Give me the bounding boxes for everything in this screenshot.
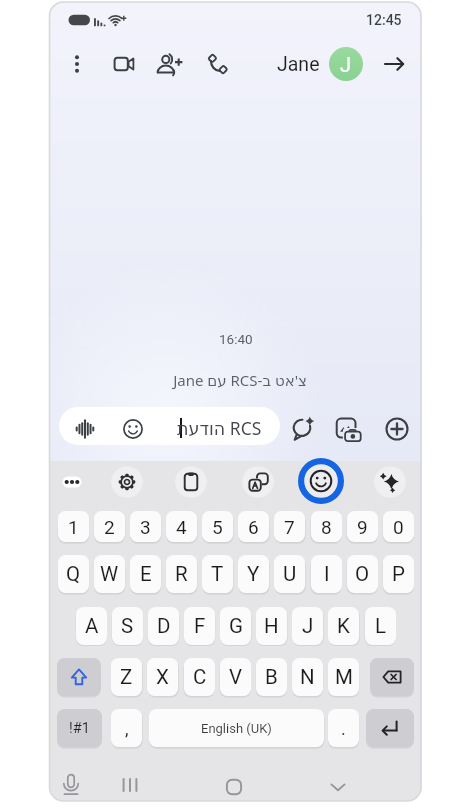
staticText: J [340,53,352,76]
button[interactable] [119,415,147,443]
button[interactable] [56,770,86,800]
staticText: Y [247,562,260,586]
staticText: A [85,614,99,638]
button[interactable]: 0 [383,511,414,542]
button[interactable] [59,407,280,445]
button[interactable]: !#1 [57,709,102,747]
button[interactable]: , [111,709,142,747]
button[interactable] [203,49,233,79]
button[interactable]: J [329,47,363,81]
staticText: P [392,562,405,586]
button[interactable] [57,658,101,696]
button[interactable]: H [256,607,287,645]
button[interactable]: V [220,658,251,696]
button[interactable]: 4 [166,511,197,542]
button[interactable]: 5 [202,511,233,542]
button[interactable]: Z [111,658,142,696]
staticText: E [140,562,152,586]
button[interactable] [71,415,99,443]
button[interactable]: 7 [274,511,305,542]
staticText: , [125,718,129,739]
staticText: B [265,665,278,689]
button[interactable]: N [292,658,323,696]
button[interactable] [372,464,408,500]
button[interactable]: D [148,607,179,645]
button[interactable]: R [166,555,197,593]
staticText: 16:40 [219,331,253,347]
staticText: G [229,614,243,638]
staticText: X [156,665,169,689]
staticText: 3 [140,516,151,538]
button[interactable]: C [184,658,215,696]
button[interactable]: Y [238,555,269,593]
button[interactable]: 3 [130,511,161,542]
button[interactable] [55,465,89,499]
button[interactable] [332,412,364,444]
staticText: U [283,562,297,586]
staticText: Q [66,562,81,586]
staticText: Z [120,665,133,689]
button[interactable] [366,709,414,747]
button[interactable]: J [292,607,323,645]
staticText: O [355,562,370,586]
staticText: הודעת RCS [177,416,262,440]
button[interactable] [323,772,353,801]
staticText: R [175,562,188,586]
staticText: K [337,614,350,638]
button[interactable]: . [328,709,359,747]
button[interactable] [240,464,276,500]
button[interactable]: U [274,555,305,593]
button[interactable] [286,412,318,444]
button[interactable]: K [328,607,359,645]
button[interactable]: S [112,607,143,645]
button[interactable]: I [311,555,342,593]
button[interactable]: G [220,607,251,645]
button[interactable]: A [76,607,107,645]
button[interactable]: 8 [311,511,342,542]
button[interactable] [370,658,414,696]
button[interactable] [151,47,185,81]
button[interactable] [109,49,139,79]
staticText: 9 [357,516,368,538]
button[interactable]: 1 [58,511,89,542]
button[interactable]: F [184,607,215,645]
staticText: D [157,614,171,638]
button[interactable] [62,49,92,79]
staticText: 7 [284,516,295,538]
button[interactable]: 6 [238,511,269,542]
button[interactable] [379,49,409,79]
staticText: !#1 [69,720,90,737]
button[interactable]: Q [58,555,89,593]
button[interactable]: O [347,555,378,593]
staticText: H [264,614,279,638]
button[interactable]: X [147,658,178,696]
staticText: 2 [104,516,115,538]
staticText: J [302,614,314,638]
staticText: V [229,665,243,689]
staticText: I [324,562,330,586]
button[interactable] [382,414,412,444]
button[interactable] [115,770,145,800]
button[interactable]: T [202,555,233,593]
button[interactable]: P [383,555,414,593]
button[interactable]: W [94,555,125,593]
staticText: C [193,665,207,689]
staticText: 0 [393,516,404,538]
button[interactable] [219,772,249,801]
staticText: English (UK) [201,721,272,736]
button[interactable] [110,465,144,499]
button[interactable]: B [256,658,287,696]
button[interactable]: L [365,607,396,645]
staticText: L [375,614,387,638]
button[interactable]: M [328,658,359,696]
button[interactable] [296,456,346,506]
button[interactable] [174,465,208,499]
staticText: 5 [212,516,223,538]
button[interactable]: 2 [94,511,125,542]
button[interactable]: 9 [347,511,378,542]
staticText: M [335,665,353,689]
staticText: 12:45 [366,12,402,28]
button[interactable]: E [130,555,161,593]
staticText: 1 [68,516,79,538]
button[interactable]: English (UK) [149,709,324,747]
